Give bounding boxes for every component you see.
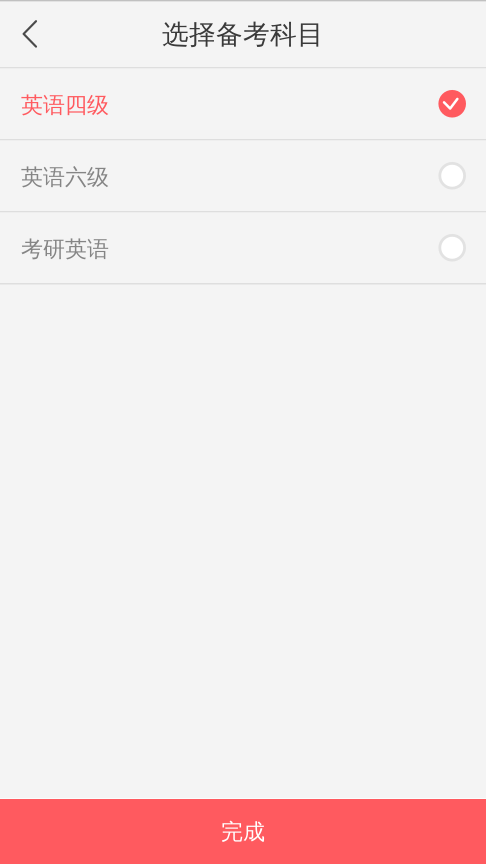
button[interactable]: 英语四级 (0, 68, 486, 139)
button[interactable]: Back (0, 2, 56, 67)
staticText: 考研英语 (21, 235, 109, 263)
staticText: 完成 (221, 818, 265, 846)
button[interactable]: 英语六级 (0, 140, 486, 211)
button[interactable]: 考研英语 (0, 212, 486, 283)
staticText: 选择备考科目 (162, 18, 324, 51)
staticText: 英语四级 (21, 91, 109, 119)
staticText: 英语六级 (21, 163, 109, 191)
button[interactable]: 完成 (0, 799, 486, 864)
